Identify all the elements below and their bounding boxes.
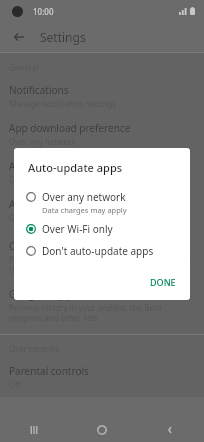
staticText: Over Wi-Fi only xyxy=(42,222,113,236)
staticText: Over any network xyxy=(42,190,126,204)
staticText: Over any network xyxy=(9,136,76,147)
staticText: Auto-update apps xyxy=(28,160,123,175)
staticText: General xyxy=(9,62,39,73)
staticText: Notifications xyxy=(9,83,69,97)
button[interactable]: Recent apps xyxy=(0,418,68,442)
staticText: Off xyxy=(9,379,21,390)
button[interactable]: Home xyxy=(68,418,136,442)
staticText: Google Play preferences xyxy=(9,287,124,301)
staticText: Auto-play videos xyxy=(9,197,87,211)
button[interactable]: Auto-play videos xyxy=(0,192,204,230)
staticText: Remove history in your wishlist, the Bet… xyxy=(9,302,194,323)
staticText: Remove searches that you have performed … xyxy=(9,254,194,275)
button[interactable]: Over any network xyxy=(14,186,190,218)
staticText: Settings xyxy=(40,29,86,45)
button[interactable]: Google Play preferences xyxy=(0,282,204,330)
button[interactable]: Back xyxy=(136,418,204,442)
staticText: Don't auto-update apps xyxy=(42,244,154,258)
staticText: 10:00 xyxy=(33,6,54,17)
button[interactable]: Clear local search history xyxy=(0,234,204,282)
staticText: On over Wi-Fi only xyxy=(9,212,78,223)
button[interactable]: Auto-update apps xyxy=(0,154,204,192)
button[interactable]: App download preference xyxy=(0,116,204,154)
staticText: App download preference xyxy=(9,121,131,135)
staticText: Data charges may apply xyxy=(42,205,127,215)
button[interactable]: Parental controls xyxy=(0,359,204,397)
staticText: User controls xyxy=(9,343,59,354)
staticText: Parental controls xyxy=(9,364,89,378)
button[interactable]: Notifications xyxy=(0,78,204,116)
button[interactable]: Don't auto-update apps xyxy=(14,240,190,262)
staticText: DONE xyxy=(150,276,176,288)
button[interactable]: DONE xyxy=(142,272,184,292)
staticText: Auto-update apps xyxy=(9,159,94,173)
staticText: Clear local search history xyxy=(9,239,127,253)
staticText: Manage notification settings xyxy=(9,98,117,109)
staticText: Over Wi-Fi only xyxy=(9,174,66,185)
button[interactable]: Over Wi-Fi only xyxy=(14,218,190,240)
button[interactable]: Back xyxy=(6,24,32,50)
